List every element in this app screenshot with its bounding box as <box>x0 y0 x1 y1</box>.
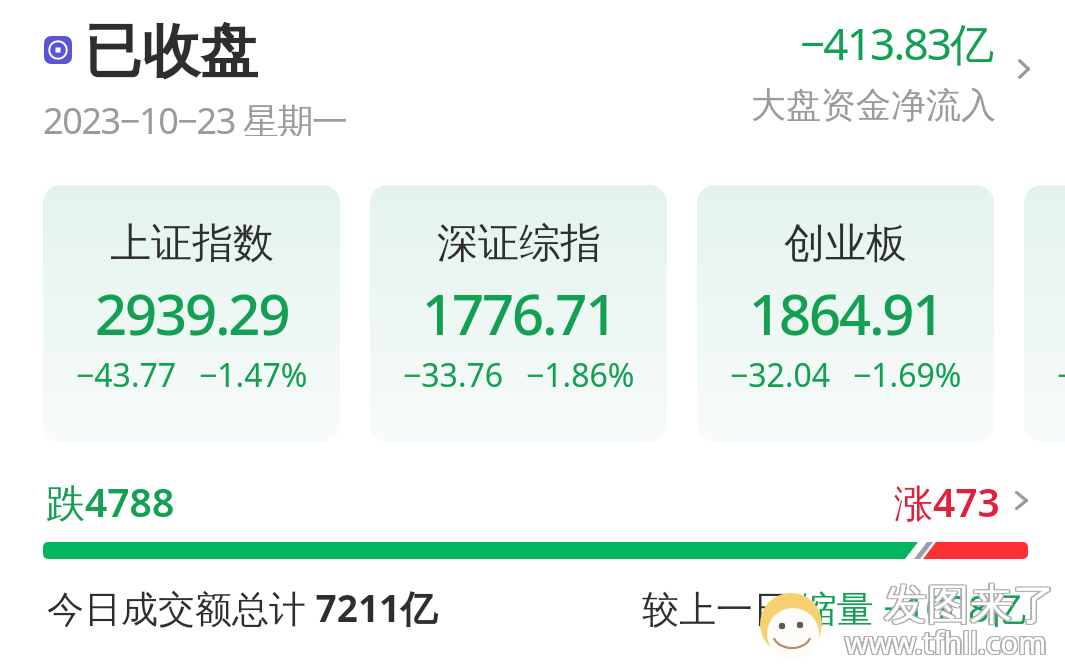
button[interactable]: 较上一日 缩量 −1008亿 <box>627 575 1047 637</box>
button[interactable]: 市场状态 <box>30 6 370 136</box>
other: 涨跌详情 <box>1015 491 1028 510</box>
staticText: −1.47% <box>199 353 308 397</box>
staticText: 2939.29 <box>95 275 289 351</box>
button[interactable]: 深证综指 <box>370 185 667 442</box>
other: 资金流向详情 <box>1018 59 1030 79</box>
staticText: 上证指数 <box>110 218 274 270</box>
staticText: 今日成交额总计 7211亿 <box>47 582 438 633</box>
staticText: −11.04 <box>1057 353 1065 397</box>
staticText: 2023−10−23 星期一 <box>43 96 347 136</box>
staticText: −1.69% <box>853 353 962 397</box>
button[interactable]: 跌4788 <box>0 466 1065 571</box>
staticText: −413.83亿 <box>800 13 993 73</box>
staticText: 较上一日 缩量 −1008亿 <box>642 582 1027 633</box>
staticText: 1864.91 <box>749 275 943 351</box>
staticText: 已收盘 <box>84 15 258 88</box>
staticText: 深证综指 <box>437 218 601 270</box>
staticText: −1.86% <box>526 353 635 397</box>
button[interactable]: 科创50 <box>1024 185 1065 442</box>
button[interactable]: 今日成交额总计 7211亿 <box>20 575 470 637</box>
staticText: −33.76 <box>403 353 504 397</box>
button[interactable]: −413.83亿 <box>745 10 1045 125</box>
staticText: 创业板 <box>784 218 907 270</box>
staticText: 涨473 <box>894 475 1000 528</box>
staticText: −32.04 <box>730 353 831 397</box>
button[interactable]: 上证指数 <box>43 185 340 442</box>
staticText: −43.77 <box>76 353 177 397</box>
other: 市场状态 <box>44 36 72 64</box>
button[interactable]: 创业板 <box>697 185 994 442</box>
staticText: 1776.71 <box>422 275 616 351</box>
staticText: 跌4788 <box>46 475 175 528</box>
staticText: 大盘资金净流入 <box>751 83 996 125</box>
